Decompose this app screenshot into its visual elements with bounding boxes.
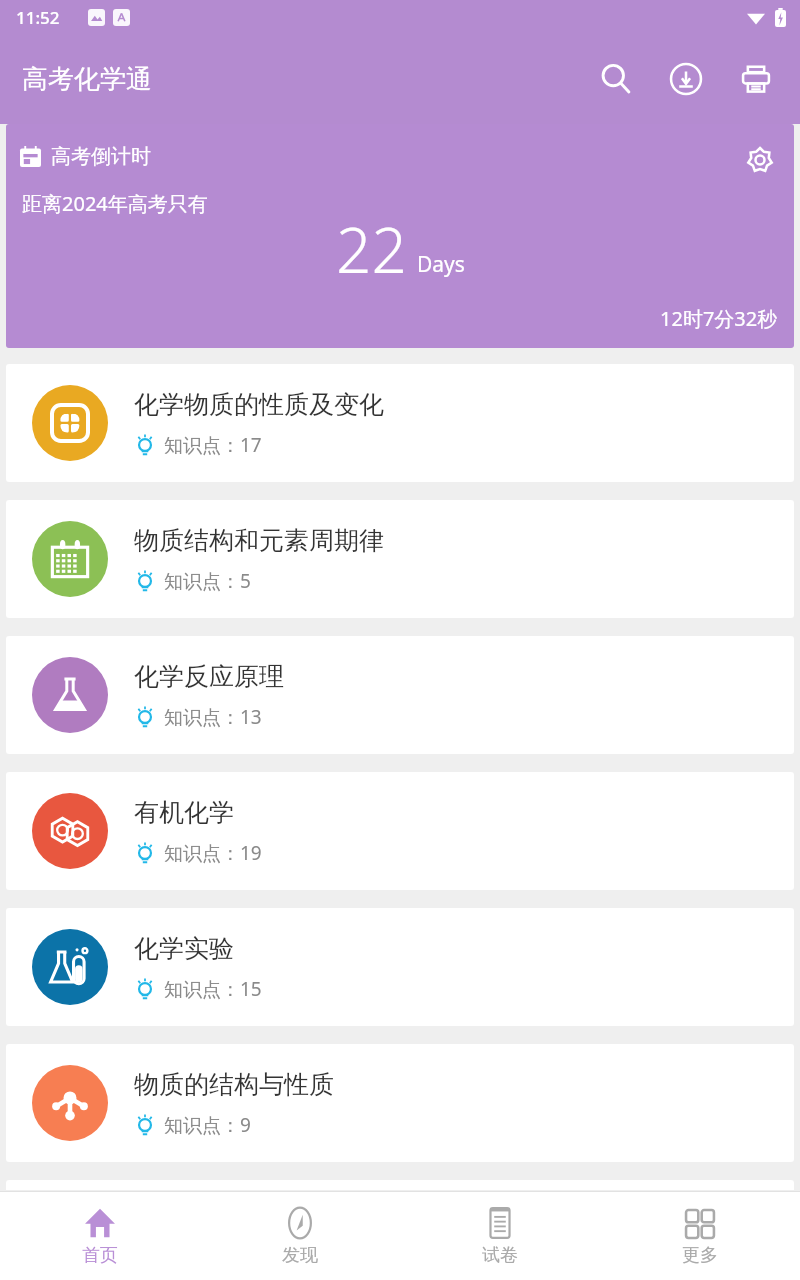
staticText: 首页 <box>82 1244 118 1267</box>
staticText: 物质结构和元素周期律 <box>134 525 384 556</box>
button[interactable]: 发现 <box>200 1192 400 1280</box>
staticText: 发现 <box>282 1244 318 1267</box>
button[interactable]: 物质的结构与性质 <box>6 1044 794 1162</box>
staticText: 化学反应原理 <box>134 661 284 692</box>
staticText: 22 <box>336 207 407 291</box>
staticText: 物质的结构与性质 <box>134 1069 334 1100</box>
staticText: 更多 <box>682 1244 718 1267</box>
staticText: 化学实验 <box>134 933 234 964</box>
staticText: Days <box>417 250 465 279</box>
staticText: 知识点：15 <box>164 976 262 1002</box>
staticText: 知识点：9 <box>164 1112 251 1138</box>
button[interactable]: Print <box>730 53 782 105</box>
staticText: 距离2024年高考只有 <box>22 190 208 217</box>
staticText: 知识点：5 <box>164 568 251 594</box>
button[interactable]: 化学实验 <box>6 908 794 1026</box>
staticText: 11:52 <box>16 6 60 29</box>
staticText: 高考化学通 <box>22 63 152 96</box>
button[interactable]: 有机化学 <box>6 772 794 890</box>
staticText: 知识点：13 <box>164 704 262 730</box>
staticText: 12时7分32秒 <box>660 305 778 332</box>
staticText: 高考倒计时 <box>51 144 151 169</box>
staticText: 化学物质的性质及变化 <box>134 389 384 420</box>
button[interactable]: 化学反应原理 <box>6 636 794 754</box>
button[interactable]: 化学物质的性质及变化 <box>6 364 794 482</box>
button[interactable]: 试卷 <box>400 1192 600 1280</box>
button[interactable]: 更多 <box>600 1192 800 1280</box>
button[interactable]: 首页 <box>0 1192 200 1280</box>
button[interactable]: 高考倒计时 <box>6 124 794 348</box>
staticText: 知识点：17 <box>164 432 262 458</box>
button[interactable]: Search <box>590 53 642 105</box>
staticText: 试卷 <box>482 1244 518 1267</box>
staticText: 有机化学 <box>134 797 234 828</box>
staticText: 知识点：19 <box>164 840 262 866</box>
button[interactable]: 物质结构和元素周期律 <box>6 500 794 618</box>
button[interactable]: Settings <box>738 138 782 182</box>
button[interactable]: Download <box>660 53 712 105</box>
